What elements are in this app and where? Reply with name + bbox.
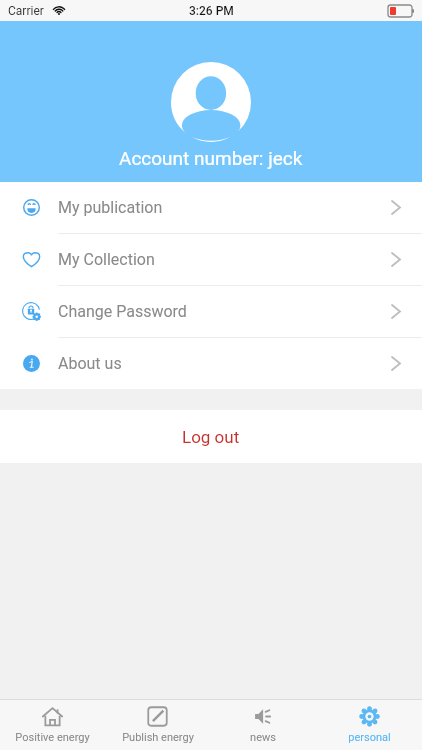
staticText: Change Password <box>58 302 187 321</box>
staticText: Account number: jeck <box>119 147 303 169</box>
staticText: My Collection <box>58 250 155 269</box>
button[interactable]: Positive energy <box>0 700 105 750</box>
staticText: Carrier <box>8 4 44 18</box>
staticText: My publication <box>58 198 163 217</box>
button[interactable]: news <box>210 700 316 750</box>
staticText: About us <box>58 354 122 373</box>
staticText: Positive energy <box>15 731 90 744</box>
button[interactable]: Log out <box>0 410 422 463</box>
staticText: Publish energy <box>122 731 194 744</box>
button[interactable]: My Collection <box>0 234 422 285</box>
staticText: news <box>250 731 276 744</box>
button[interactable]: personal <box>316 700 422 750</box>
button[interactable]: Publish energy <box>105 700 210 750</box>
button[interactable]: Change Password <box>0 286 422 337</box>
button[interactable]: My publication <box>0 182 422 233</box>
staticText: 3:26 PM <box>189 4 234 18</box>
staticText: Log out <box>182 427 240 447</box>
button[interactable]: About us <box>0 338 422 389</box>
staticText: personal <box>348 731 391 744</box>
